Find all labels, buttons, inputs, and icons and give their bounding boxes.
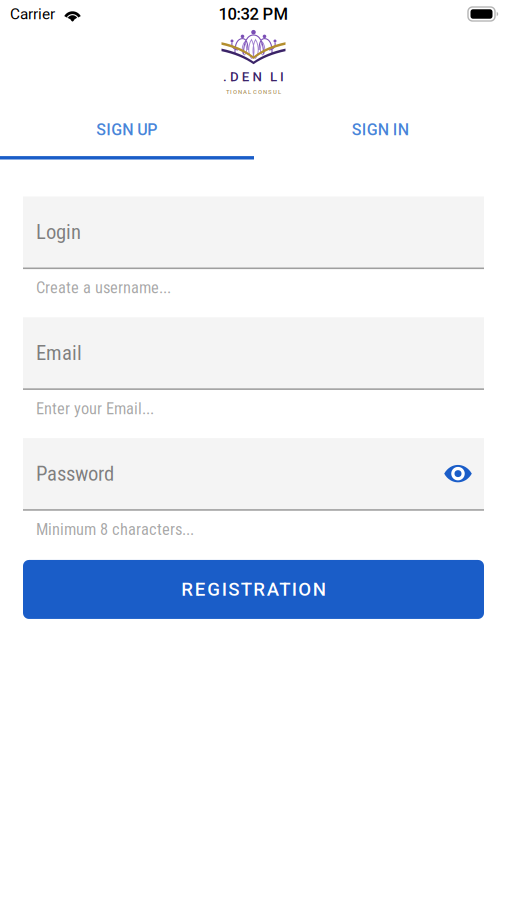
staticText: .DEN LI bbox=[223, 69, 284, 85]
staticText: Carrier bbox=[10, 5, 55, 23]
staticText: Create a username... bbox=[36, 278, 171, 297]
button[interactable]: REGISTRATION bbox=[23, 560, 484, 619]
staticText: T I O N A L C O N S U L bbox=[226, 89, 281, 95]
staticText: 10:32 PM bbox=[218, 4, 288, 24]
button[interactable]: SIGN UP bbox=[0, 110, 253, 159]
button[interactable]: Show password bbox=[441, 459, 475, 489]
staticText: REGISTRATION bbox=[181, 578, 326, 600]
staticText: SIGN IN bbox=[352, 120, 409, 139]
button[interactable]: SIGN IN bbox=[253, 110, 507, 159]
staticText: Minimum 8 characters... bbox=[36, 520, 194, 539]
staticText: Enter your Email... bbox=[36, 399, 154, 418]
staticText: Password bbox=[36, 461, 114, 486]
staticText: SIGN UP bbox=[96, 120, 157, 139]
staticText: Email bbox=[36, 341, 82, 365]
staticText: Login bbox=[36, 220, 81, 244]
